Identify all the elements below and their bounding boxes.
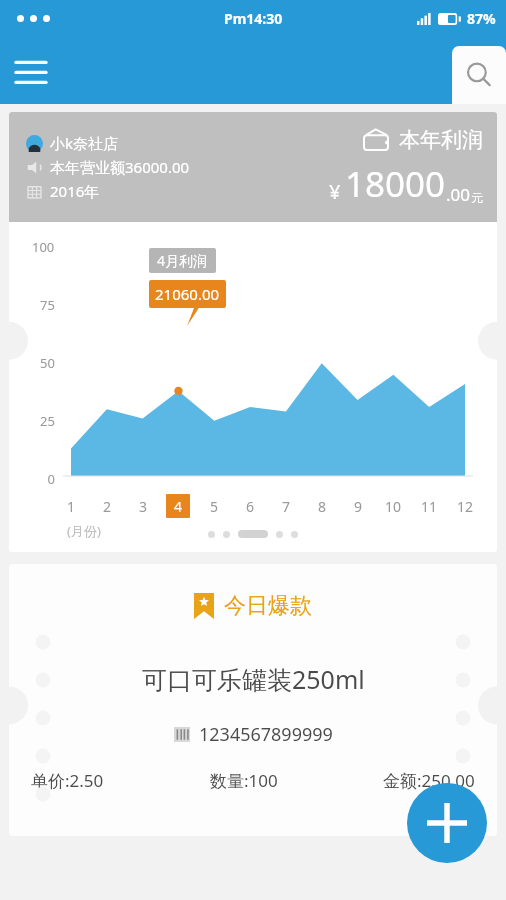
staticText: 可口可乐罐装250ml — [142, 662, 365, 696]
staticText: 4 — [174, 497, 183, 516]
staticText: 今日爆款 — [224, 592, 312, 620]
staticText: ¥ — [329, 178, 341, 205]
button[interactable]: 7 — [274, 494, 298, 518]
staticText: 50 — [40, 354, 55, 372]
staticText: 12 — [457, 497, 474, 516]
staticText: 75 — [40, 296, 55, 314]
staticText: 9 — [354, 497, 363, 516]
staticText: 21060.00 — [155, 284, 220, 304]
staticText: 100 — [32, 238, 55, 256]
staticText: 1234567899999 — [199, 722, 333, 747]
button[interactable]: 12 — [453, 494, 477, 518]
staticText: 数量:100 — [210, 769, 278, 792]
button[interactable]: 11 — [417, 494, 441, 518]
button[interactable]: 9 — [346, 494, 370, 518]
staticText: 小k奈社店 — [50, 133, 119, 153]
staticText: 10 — [385, 497, 402, 516]
staticText: 2016年 — [50, 181, 100, 201]
staticText: 本年营业额36000.00 — [50, 157, 190, 177]
staticText: Pm14:30 — [224, 9, 283, 28]
staticText: .00 — [446, 183, 471, 206]
button[interactable]: Search — [452, 46, 506, 104]
button[interactable]: 5 — [202, 494, 226, 518]
staticText: 18000 — [345, 160, 446, 208]
staticText: 2 — [103, 497, 112, 516]
button[interactable]: 3 — [131, 494, 155, 518]
staticText: 3 — [139, 497, 148, 516]
staticText: 4月利润 — [157, 251, 208, 270]
staticText: 25 — [40, 412, 55, 430]
staticText: 7 — [282, 497, 291, 516]
button[interactable]: 6 — [238, 494, 262, 518]
button[interactable]: 今日爆款 — [9, 564, 497, 836]
staticText: 5 — [210, 497, 219, 516]
staticText: 6 — [246, 497, 255, 516]
button[interactable]: 小k奈社店 — [9, 112, 497, 552]
staticText: 1 — [67, 497, 76, 516]
button[interactable]: 10 — [381, 494, 405, 518]
staticText: 元 — [471, 190, 483, 205]
button[interactable]: Add — [407, 783, 487, 863]
staticText: 11 — [421, 497, 438, 516]
staticText: 0 — [9, 470, 55, 488]
button[interactable]: 8 — [310, 494, 334, 518]
staticText: 8 — [318, 497, 327, 516]
button[interactable]: 4 — [166, 494, 190, 518]
button[interactable]: Menu — [8, 47, 54, 93]
staticText: 单价:2.50 — [31, 769, 104, 792]
button[interactable]: 2 — [95, 494, 119, 518]
button[interactable]: 1 — [59, 494, 83, 518]
staticText: 87% — [467, 9, 496, 28]
staticText: (月份) — [67, 522, 101, 540]
staticText: 金额:250.00 — [383, 769, 475, 792]
staticText: 本年利润 — [399, 127, 483, 153]
